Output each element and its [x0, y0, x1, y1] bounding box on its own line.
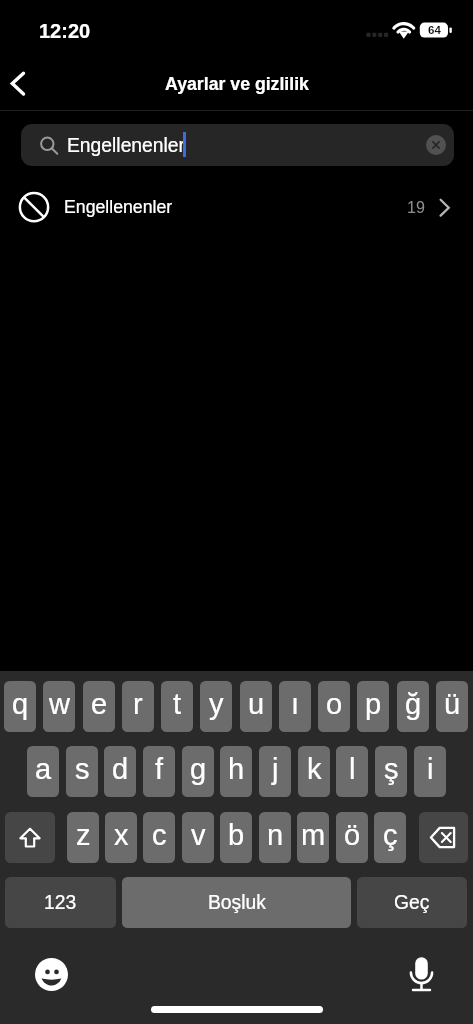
button[interactable]: c [143, 812, 175, 863]
staticText: 12:20 [39, 20, 91, 40]
staticText: l [349, 753, 356, 785]
button[interactable]: t [161, 681, 193, 732]
staticText: q [12, 688, 29, 720]
staticText: n [267, 819, 284, 851]
button[interactable]: ş [375, 746, 407, 797]
staticText: ı [291, 688, 300, 720]
staticText: y [209, 688, 224, 720]
staticText: p [365, 688, 382, 720]
staticText: ü [444, 688, 461, 720]
staticText: 64 [428, 24, 441, 37]
staticText: v [191, 819, 206, 851]
button[interactable]: Boşluk [122, 877, 351, 928]
button[interactable]: Back [0, 62, 42, 104]
staticText: z [76, 819, 91, 851]
staticText: h [228, 753, 245, 785]
button[interactable]: x [105, 812, 137, 863]
button[interactable]: n [259, 812, 291, 863]
button[interactable]: Dictation [405, 955, 438, 988]
button[interactable]: m [297, 812, 329, 863]
button[interactable]: Emoji keyboard [35, 958, 68, 991]
button[interactable]: ı [279, 681, 311, 732]
staticText: e [91, 688, 108, 720]
staticText: s [75, 753, 90, 785]
button[interactable]: Backspace [419, 812, 468, 863]
staticText: ö [344, 819, 361, 851]
button[interactable]: u [240, 681, 272, 732]
staticText: f [155, 753, 164, 785]
staticText: r [133, 688, 143, 720]
button[interactable]: a [27, 746, 59, 797]
button[interactable]: i [414, 746, 446, 797]
staticText: u [248, 688, 265, 720]
staticText: Geç [394, 892, 430, 914]
staticText: t [173, 688, 182, 720]
staticText: a [35, 753, 52, 785]
staticText: Ayarlar ve gizlilik [165, 74, 309, 94]
button[interactable]: z [67, 812, 99, 863]
button[interactable]: Engellenenler [21, 124, 454, 166]
button[interactable]: v [182, 812, 214, 863]
button[interactable]: g [182, 746, 214, 797]
button[interactable]: d [104, 746, 136, 797]
button[interactable]: s [66, 746, 98, 797]
button[interactable]: k [298, 746, 330, 797]
staticText: j [272, 753, 279, 785]
staticText: o [326, 688, 343, 720]
button[interactable]: j [259, 746, 291, 797]
button[interactable]: r [122, 681, 154, 732]
button[interactable]: b [220, 812, 252, 863]
button[interactable]: Clear text [426, 135, 446, 155]
staticText: g [190, 753, 207, 785]
staticText: ğ [405, 688, 422, 720]
staticText: c [152, 819, 167, 851]
staticText: x [114, 819, 129, 851]
staticText: b [228, 819, 245, 851]
button[interactable]: w [43, 681, 75, 732]
button[interactable]: ö [336, 812, 368, 863]
button[interactable]: Shift [5, 812, 55, 863]
button[interactable]: 123 [5, 877, 116, 928]
button[interactable]: Engellenenler [0, 179, 473, 235]
button[interactable]: ç [374, 812, 406, 863]
staticText: Engellenenler [64, 197, 173, 217]
button[interactable]: Geç [357, 877, 467, 928]
staticText: i [427, 753, 434, 785]
staticText: w [49, 688, 70, 720]
button[interactable]: ğ [397, 681, 429, 732]
staticText: k [307, 753, 322, 785]
button[interactable]: y [200, 681, 232, 732]
button[interactable]: e [83, 681, 115, 732]
staticText: 19 [407, 199, 425, 217]
staticText: 123 [44, 892, 77, 914]
button[interactable]: ü [436, 681, 468, 732]
button[interactable]: f [143, 746, 175, 797]
button[interactable]: o [318, 681, 350, 732]
staticText: d [112, 753, 129, 785]
staticText: Boşluk [208, 892, 266, 914]
button[interactable]: h [220, 746, 252, 797]
button[interactable]: p [357, 681, 389, 732]
staticText: ş [384, 753, 399, 785]
staticText: m [301, 819, 326, 851]
staticText: Engellenenler [67, 135, 186, 157]
staticText: ç [383, 819, 398, 851]
button[interactable]: l [336, 746, 368, 797]
button[interactable]: q [4, 681, 36, 732]
